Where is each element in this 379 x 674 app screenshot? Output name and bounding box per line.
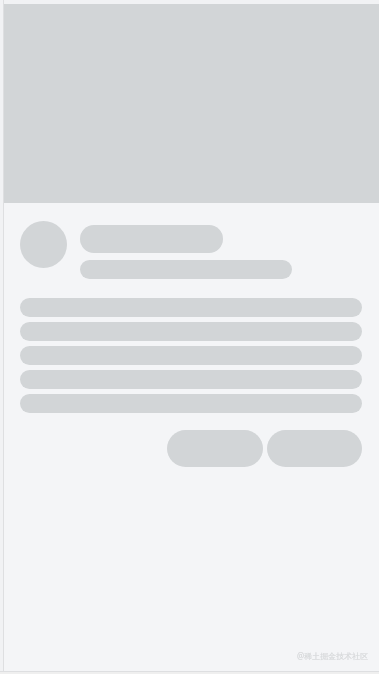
staticText: @稀土掘金技术社区 [297, 650, 369, 661]
button[interactable]: Secondary action [267, 430, 362, 467]
other: Avatar loading [20, 221, 67, 268]
button[interactable]: Primary action [167, 430, 263, 467]
